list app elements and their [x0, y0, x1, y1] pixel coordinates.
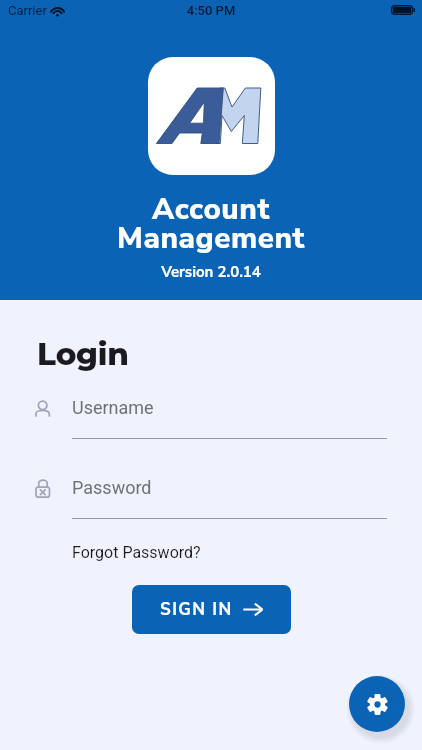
staticText: Forgot Password?: [72, 543, 201, 562]
button[interactable]: Forgot Password?: [72, 541, 201, 564]
button[interactable]: SIGN IN: [132, 585, 291, 634]
staticText: SIGN IN: [160, 598, 233, 621]
button[interactable]: Password: [30, 474, 387, 500]
staticText: Username: [72, 397, 154, 418]
staticText: Carrier: [8, 3, 47, 18]
staticText: 4:50 PM: [0, 3, 422, 18]
staticText: Account: [0, 189, 422, 229]
staticText: Version 2.0.14: [0, 262, 422, 282]
staticText: Login: [37, 335, 129, 373]
staticText: Management: [0, 218, 422, 258]
button[interactable]: Username: [30, 394, 387, 420]
button[interactable]: Settings: [349, 676, 405, 732]
staticText: Password: [72, 477, 152, 498]
